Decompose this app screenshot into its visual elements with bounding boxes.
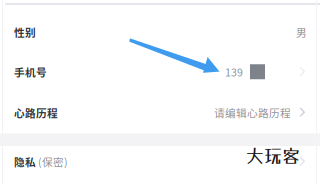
staticText: 隐私 <box>14 154 36 169</box>
staticText: 性别 <box>14 24 36 40</box>
button[interactable]: 心路历程 <box>0 91 320 133</box>
staticText: 大玩客 <box>246 145 300 166</box>
staticText: 139 <box>225 64 243 79</box>
staticText: 男 <box>296 24 307 40</box>
button[interactable]: 手机号 <box>0 52 320 91</box>
staticText: 心路历程 <box>14 105 58 120</box>
button[interactable]: 隐私 <box>0 146 320 177</box>
staticText: (保密) <box>36 154 68 169</box>
button[interactable]: 性别 <box>0 12 320 52</box>
staticText: 请编辑心路历程 <box>214 105 291 120</box>
staticText: 手机号 <box>14 64 47 79</box>
